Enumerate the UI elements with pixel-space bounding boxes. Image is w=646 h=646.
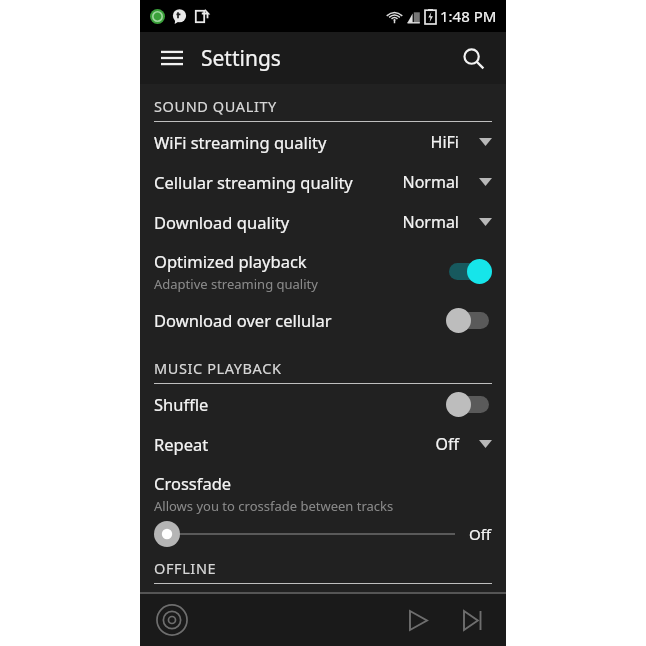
staticText: Download quality: [154, 211, 402, 233]
staticText: Shuffle: [154, 393, 209, 415]
staticText: OFFLINE: [154, 558, 217, 578]
staticText: WiFi streaming quality: [154, 131, 430, 153]
staticText: Normal: [402, 171, 459, 193]
staticText: Optimized playback: [154, 250, 307, 272]
button[interactable]: Cellular streaming quality: [140, 162, 506, 202]
button[interactable]: Optimized playback: [140, 242, 506, 300]
staticText: Repeat: [154, 433, 435, 455]
button[interactable]: Shuffle: [140, 384, 506, 424]
staticText: Crossfade: [154, 472, 232, 494]
button[interactable]: Crossfade: [154, 472, 492, 548]
button[interactable]: Repeat: [140, 424, 506, 464]
staticText: Adaptive streaming quality: [154, 275, 318, 293]
staticText: Download over cellular: [154, 309, 332, 331]
button[interactable]: Download over cellular: [140, 300, 506, 340]
staticText: HiFi: [430, 131, 459, 153]
button[interactable]: Next track: [454, 602, 490, 638]
staticText: MUSIC PLAYBACK: [154, 358, 282, 378]
staticText: Normal: [402, 211, 459, 233]
staticText: Cellular streaming quality: [154, 171, 402, 193]
button[interactable]: WiFi streaming quality: [140, 122, 506, 162]
button[interactable]: Search: [454, 39, 492, 77]
button[interactable]: Now playing: [152, 600, 192, 640]
staticText: Off: [469, 524, 492, 544]
button[interactable]: Open navigation menu: [154, 40, 190, 76]
staticText: Off: [435, 433, 459, 455]
staticText: Allows you to crossfade between tracks: [154, 497, 394, 515]
button[interactable]: Play: [400, 602, 436, 638]
staticText: Settings: [201, 44, 281, 73]
staticText: SOUND QUALITY: [154, 96, 277, 116]
staticText: 1:48 PM: [440, 6, 497, 26]
button[interactable]: Download quality: [140, 202, 506, 242]
